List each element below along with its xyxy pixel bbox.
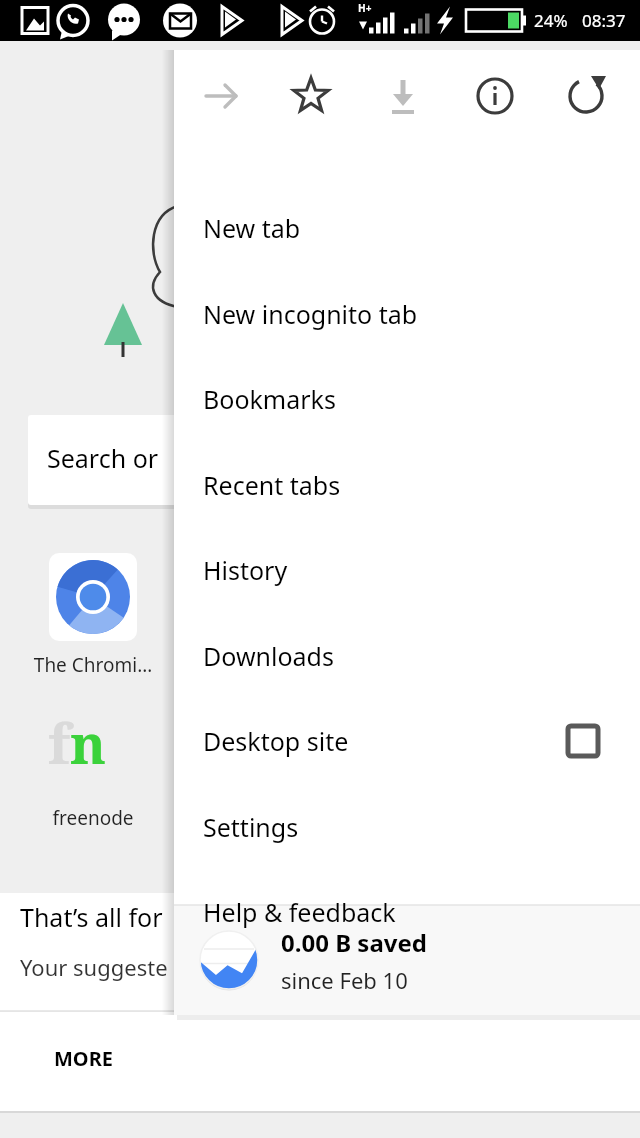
staticText: New tab [203,211,301,245]
button[interactable]: Bookmarks [174,356,640,441]
button[interactable]: MORE [50,1042,117,1075]
staticText: H+ [358,1,372,15]
button[interactable]: Recent tabs [174,442,640,527]
button[interactable]: Desktop site [174,698,640,783]
button[interactable]: Bookmark [277,50,345,142]
staticText: The Chromi… [30,652,156,678]
staticText: Search or [47,441,165,475]
button[interactable]: Downloads [174,613,640,698]
staticText: That’s all for [20,900,163,934]
button[interactable]: New tab [174,185,640,270]
staticText: freenode [30,805,156,831]
button[interactable]: The Chromi… [30,652,156,678]
staticText: 08:37 [582,9,626,32]
staticText: Your suggeste [20,952,168,982]
staticText: Downloads [203,639,334,673]
staticText: 24% [534,9,568,32]
button[interactable]: Forward [187,50,255,142]
staticText: Settings [203,810,299,844]
staticText: History [203,553,288,587]
staticText: since Feb 10 [281,965,408,995]
button[interactable]: Download [369,50,437,142]
button[interactable]: 0.00 B saved [174,905,640,1015]
button[interactable]: History [174,527,640,612]
button[interactable]: Settings [174,784,640,869]
button[interactable]: Help & feedback [174,869,640,954]
staticText: f [48,706,70,780]
staticText: New incognito tab [203,297,418,331]
button[interactable]: Reload [552,50,620,142]
staticText: Recent tabs [203,468,341,502]
button[interactable]: New incognito tab [174,271,640,356]
staticText: MORE [54,1045,113,1072]
staticText: n [70,706,107,780]
staticText: 0.00 B saved [281,926,427,959]
staticText: Bookmarks [203,382,336,416]
button[interactable]: freenode [30,805,156,831]
staticText: Desktop site [203,724,349,758]
button[interactable]: Page info [461,50,529,142]
staticText: Help & feedback [203,895,396,929]
